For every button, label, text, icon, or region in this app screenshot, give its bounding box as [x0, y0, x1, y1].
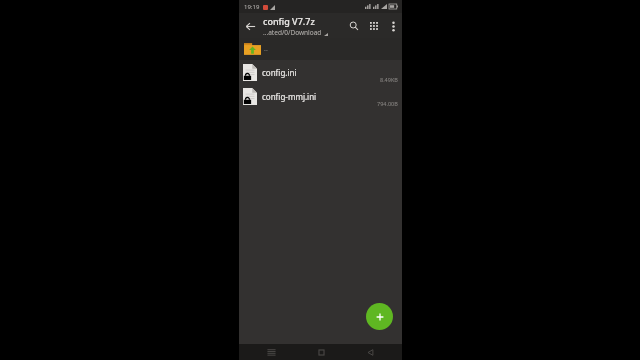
staticText: ...ated/0/Download [263, 28, 322, 37]
button[interactable]: .. [239, 38, 402, 60]
button[interactable]: config.ini [239, 60, 402, 84]
button[interactable]: config V7.7z [263, 15, 344, 37]
button[interactable]: Recent apps [254, 344, 288, 360]
staticText: .. [264, 44, 268, 54]
staticText: 8.49KB [380, 76, 398, 83]
staticText: 19:19 [244, 3, 260, 11]
staticText: config.ini [262, 67, 402, 78]
button[interactable]: Home [304, 344, 338, 360]
button[interactable]: Back [353, 344, 387, 360]
button[interactable]: config-mmj.ini [239, 84, 402, 108]
staticText: config-mmj.ini [262, 91, 402, 102]
staticText: config V7.7z [263, 15, 315, 27]
button[interactable]: Back [239, 15, 261, 37]
button[interactable]: Add [366, 303, 393, 330]
button[interactable]: Search [344, 16, 364, 36]
button[interactable]: Grid view [364, 16, 384, 36]
button[interactable]: More options [384, 17, 402, 35]
staticText: 794.00B [377, 100, 398, 107]
